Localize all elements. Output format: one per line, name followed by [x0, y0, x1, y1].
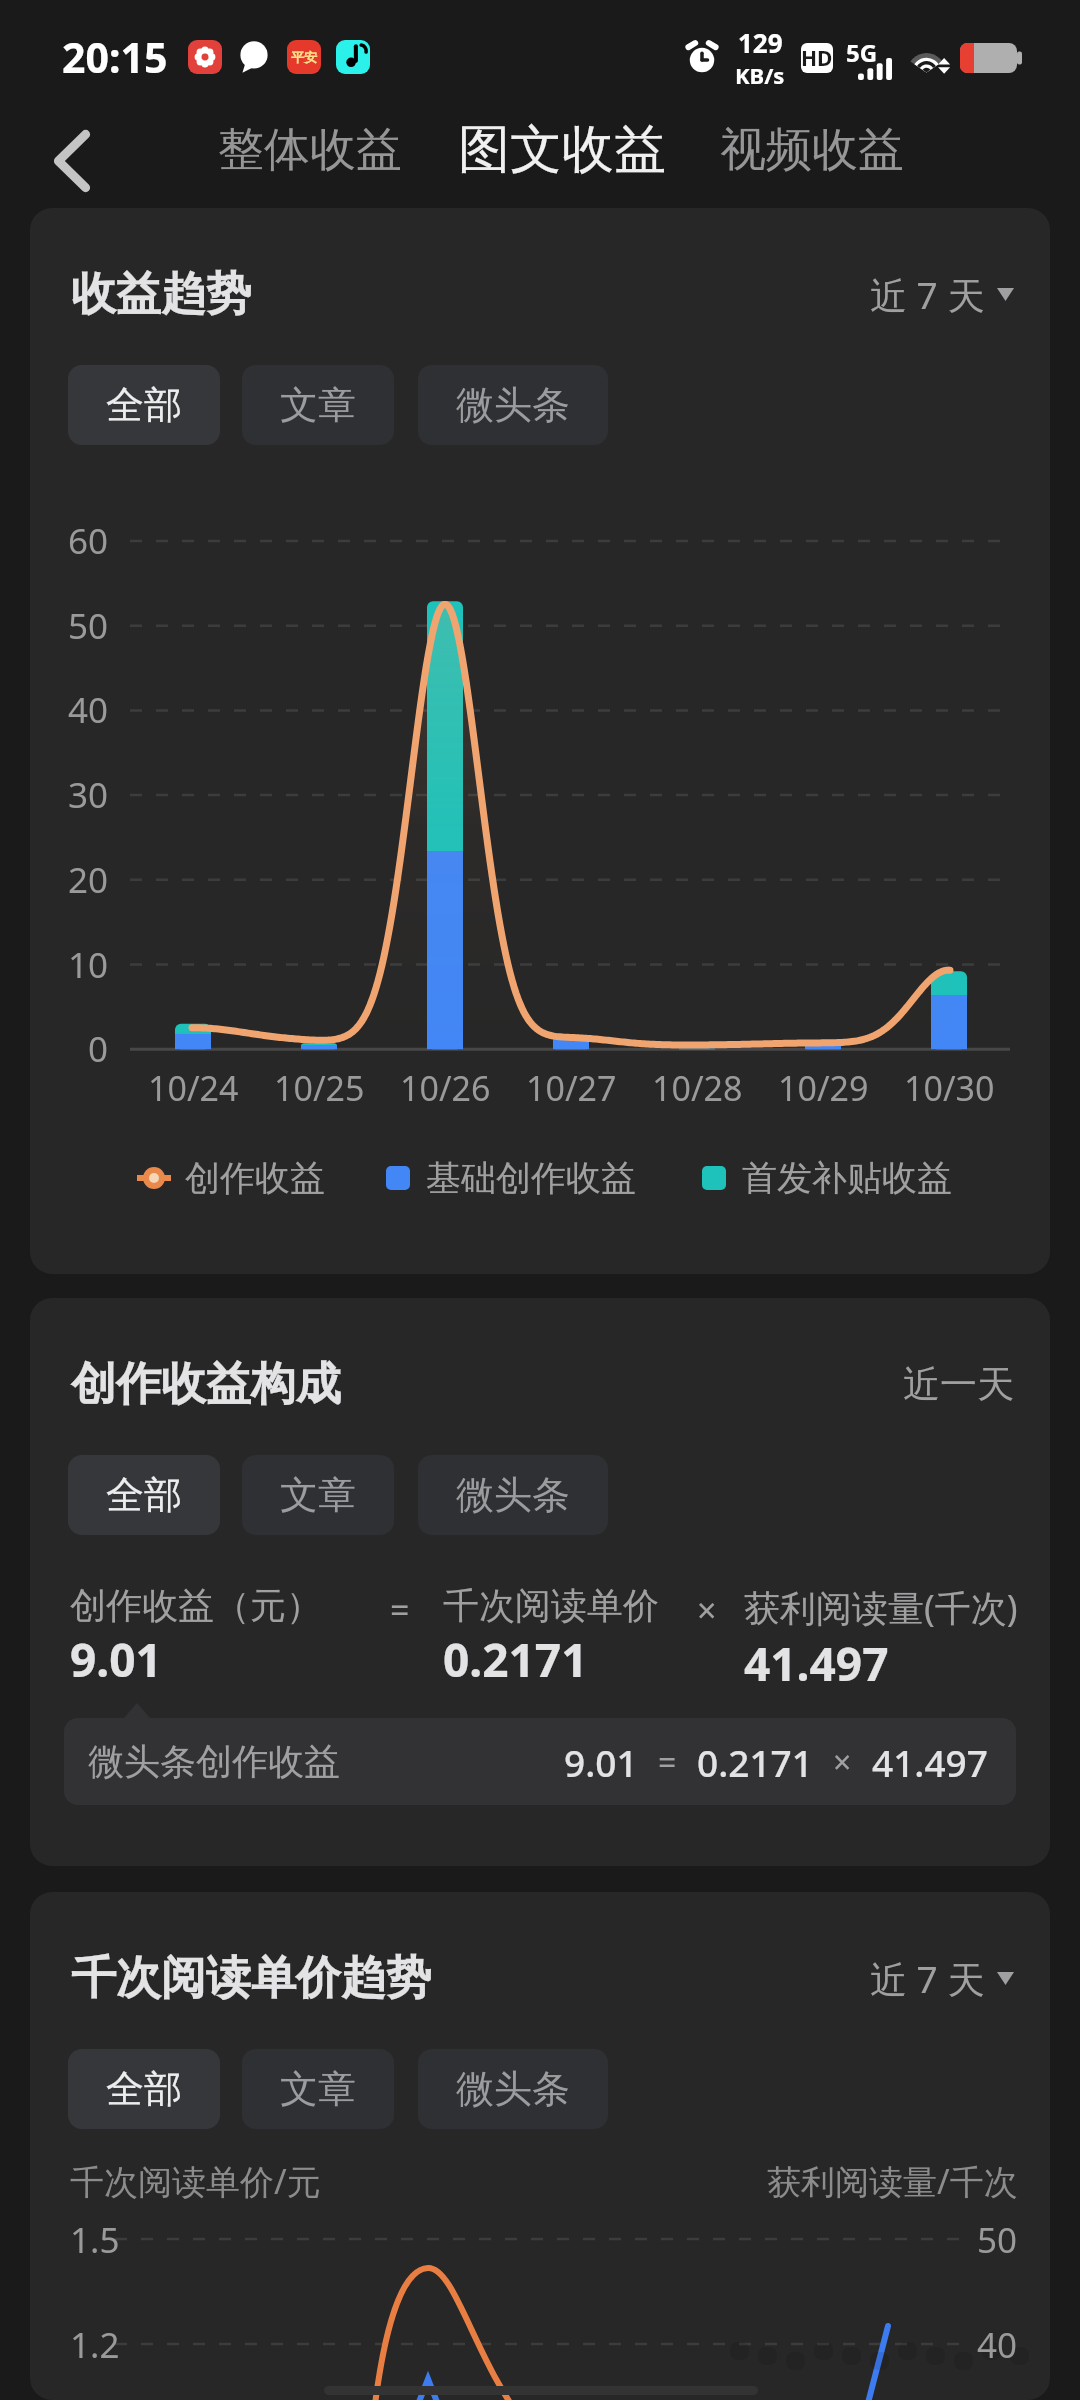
staticText: × [833, 1740, 852, 1784]
button[interactable]: 整体收益 [216, 121, 404, 201]
staticText: 50 [68, 602, 109, 650]
staticText: 10/29 [778, 1065, 869, 1111]
button[interactable]: 微头条 [418, 2049, 608, 2129]
staticText: 微头条 [456, 1471, 570, 1519]
staticText: 0.2171 [443, 1628, 588, 1691]
staticText: = [658, 1740, 677, 1784]
staticText: 千次阅读单价/元 [70, 2158, 321, 2204]
staticText: 50 [977, 2216, 1018, 2264]
button[interactable]: 全部 [68, 2049, 220, 2129]
staticText: 10/24 [148, 1065, 239, 1111]
button[interactable]: 近 7 天 [870, 1953, 1014, 2004]
staticText: 创作收益 [185, 1156, 325, 1200]
button[interactable]: 全部 [68, 365, 220, 445]
staticText: 9.01 [564, 1737, 638, 1787]
staticText: 1.2 [70, 2321, 120, 2369]
staticText: 视频收益 [720, 121, 904, 179]
button[interactable]: 文章 [242, 365, 394, 445]
button[interactable]: 微头条 [418, 1455, 608, 1535]
button[interactable]: 文章 [242, 2049, 394, 2129]
staticText: 20 [68, 856, 109, 904]
staticText: 10/26 [400, 1065, 491, 1111]
staticText: 千次阅读单价趋势 [71, 1950, 431, 2007]
staticText: 30 [68, 771, 109, 819]
button[interactable]: 全部 [68, 1455, 220, 1535]
button[interactable]: Back [36, 125, 108, 197]
staticText: 文章 [280, 2065, 356, 2113]
staticText: 0 [88, 1025, 109, 1073]
staticText: 基础创作收益 [426, 1156, 636, 1200]
staticText: 近一天 [903, 1361, 1014, 1408]
staticText: 41.497 [872, 1737, 988, 1787]
staticText: 40 [977, 2321, 1018, 2369]
staticText: 收益趋势 [71, 266, 251, 323]
button[interactable]: 近一天 [903, 1361, 1014, 1408]
staticText: 全部 [106, 381, 182, 429]
staticText: 平安 [291, 49, 317, 65]
staticText: = [390, 1587, 410, 1633]
staticText: 图文收益 [458, 117, 666, 183]
button[interactable]: 文章 [242, 1455, 394, 1535]
staticText: 全部 [106, 1471, 182, 1519]
staticText: 10/25 [274, 1065, 365, 1111]
staticText: 129 [738, 25, 783, 60]
staticText: 9.01 [70, 1628, 162, 1691]
staticText: 40 [68, 686, 109, 734]
staticText: 微头条 [456, 381, 570, 429]
staticText: × [697, 1587, 717, 1633]
staticText: 千次阅读单价 [443, 1583, 659, 1628]
staticText: 整体收益 [218, 121, 402, 179]
staticText: 5G [846, 36, 878, 69]
staticText: 获利阅读量/千次 [767, 2158, 1018, 2204]
staticText: 10/28 [652, 1065, 743, 1111]
staticText: 微头条 [456, 2065, 570, 2113]
staticText: 41.497 [744, 1632, 889, 1695]
staticText: 60 [68, 517, 109, 565]
staticText: 微头条创作收益 [88, 1739, 340, 1784]
staticText: 首发补贴收益 [742, 1156, 952, 1200]
button[interactable]: 微头条 [418, 365, 608, 445]
staticText: 全部 [106, 2065, 182, 2113]
staticText: 1.5 [70, 2216, 120, 2264]
staticText: 20:15 [62, 29, 168, 85]
staticText: 文章 [280, 381, 356, 429]
staticText: 10 [68, 941, 109, 989]
staticText: HD [801, 44, 833, 73]
staticText: 10/27 [526, 1065, 617, 1111]
button[interactable]: 视频收益 [718, 121, 906, 201]
staticText: 获利阅读量(千次) [744, 1583, 1018, 1632]
staticText: 10/30 [904, 1065, 995, 1111]
staticText: 0.2171 [697, 1737, 813, 1787]
staticText: 创作收益构成 [71, 1356, 341, 1413]
staticText: 文章 [280, 1471, 356, 1519]
staticText: 近 7 天 [870, 1953, 985, 2004]
staticText: 创作收益（元） [70, 1583, 322, 1628]
button[interactable]: 图文收益 [456, 117, 668, 205]
button[interactable]: 近 7 天 [870, 269, 1014, 320]
staticText: 近 7 天 [870, 269, 985, 320]
staticText: KB/s [735, 60, 785, 90]
